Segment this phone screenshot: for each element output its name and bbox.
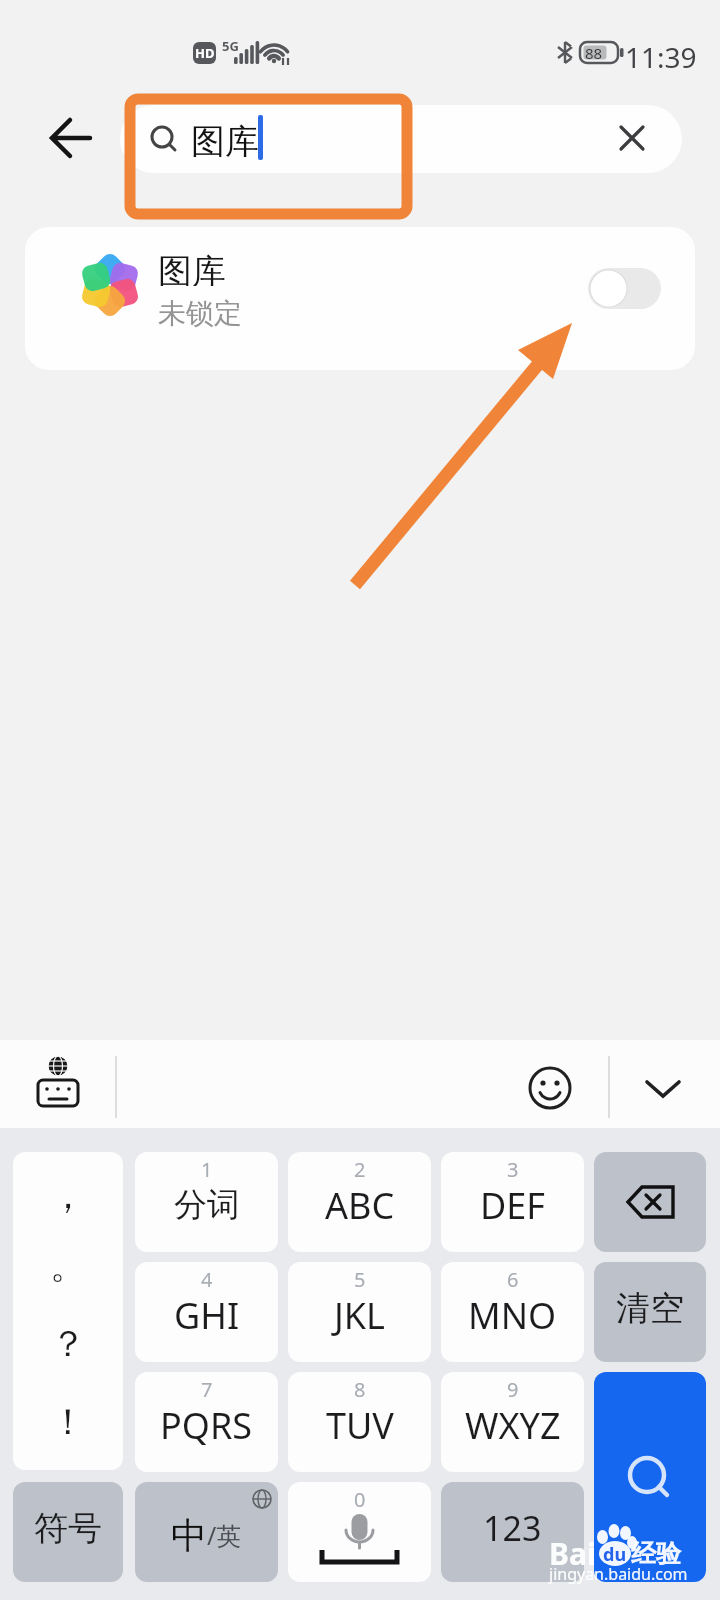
button[interactable]: 123 <box>441 1482 584 1582</box>
staticText: ABC <box>325 1181 395 1230</box>
button[interactable] <box>40 108 100 168</box>
staticText: jingyan.baidu.com <box>549 1563 688 1585</box>
staticText: PQRS <box>160 1401 253 1450</box>
staticText: GHI <box>174 1291 240 1340</box>
button[interactable] <box>30 1052 86 1116</box>
staticText: 未锁定 <box>158 296 242 328</box>
button[interactable]: 2 <box>288 1152 431 1252</box>
button[interactable]: 4 <box>135 1262 278 1362</box>
staticText: 分词 <box>174 1184 240 1226</box>
staticText: 9 <box>507 1376 519 1397</box>
button[interactable] <box>588 268 661 309</box>
staticText: DEF <box>480 1181 545 1230</box>
staticText: 中 <box>171 1513 207 1558</box>
button[interactable]: 清空 <box>594 1262 706 1362</box>
staticText: 6 <box>507 1266 519 1287</box>
staticText: 123 <box>483 1505 542 1551</box>
button[interactable] <box>594 1152 706 1252</box>
button[interactable]: 6 <box>441 1262 584 1362</box>
staticText: JKL <box>334 1291 385 1340</box>
staticText: 3 <box>507 1156 519 1177</box>
staticText: 4 <box>201 1266 213 1287</box>
staticText: Bai <box>549 1533 596 1573</box>
staticText: 2 <box>354 1156 366 1177</box>
button[interactable]: 8 <box>288 1372 431 1472</box>
staticText: 图库 <box>191 120 259 158</box>
button[interactable] <box>594 1372 706 1582</box>
staticText: du <box>603 1542 627 1567</box>
staticText: ， <box>50 1173 86 1218</box>
staticText: 符号 <box>34 1507 102 1550</box>
button[interactable]: 图库 <box>120 105 682 173</box>
button[interactable] <box>637 1062 689 1114</box>
staticText: ？ <box>50 1321 86 1366</box>
button[interactable] <box>524 1062 576 1114</box>
staticText: 88 <box>585 43 603 63</box>
staticText: WXYZ <box>465 1401 561 1450</box>
staticText: 5 <box>354 1266 366 1287</box>
staticText: /英 <box>207 1518 242 1552</box>
button[interactable]: 0 <box>288 1482 431 1582</box>
staticText: HD <box>195 44 215 62</box>
staticText: TUV <box>326 1401 394 1450</box>
button[interactable]: 7 <box>135 1372 278 1472</box>
staticText: 5G <box>222 37 239 53</box>
staticText: MNO <box>468 1291 557 1340</box>
button[interactable]: 5 <box>288 1262 431 1362</box>
button[interactable]: ， <box>13 1152 123 1470</box>
button[interactable]: 1 <box>135 1152 278 1252</box>
staticText: 图库 <box>158 250 226 286</box>
staticText: 1 <box>201 1156 213 1177</box>
staticText: ！ <box>50 1399 86 1444</box>
button[interactable]: 9 <box>441 1372 584 1472</box>
button[interactable]: 图库 <box>25 227 695 370</box>
staticText: 8 <box>354 1376 366 1397</box>
button[interactable]: 中 <box>135 1482 278 1582</box>
staticText: 。 <box>50 1243 86 1288</box>
staticText: 清空 <box>616 1287 684 1330</box>
button[interactable]: 3 <box>441 1152 584 1252</box>
button[interactable]: 符号 <box>13 1482 123 1582</box>
staticText: 11:39 <box>625 38 697 68</box>
staticText: 0 <box>354 1486 366 1507</box>
staticText: 7 <box>201 1376 213 1397</box>
staticText: 经验 <box>631 1538 681 1569</box>
